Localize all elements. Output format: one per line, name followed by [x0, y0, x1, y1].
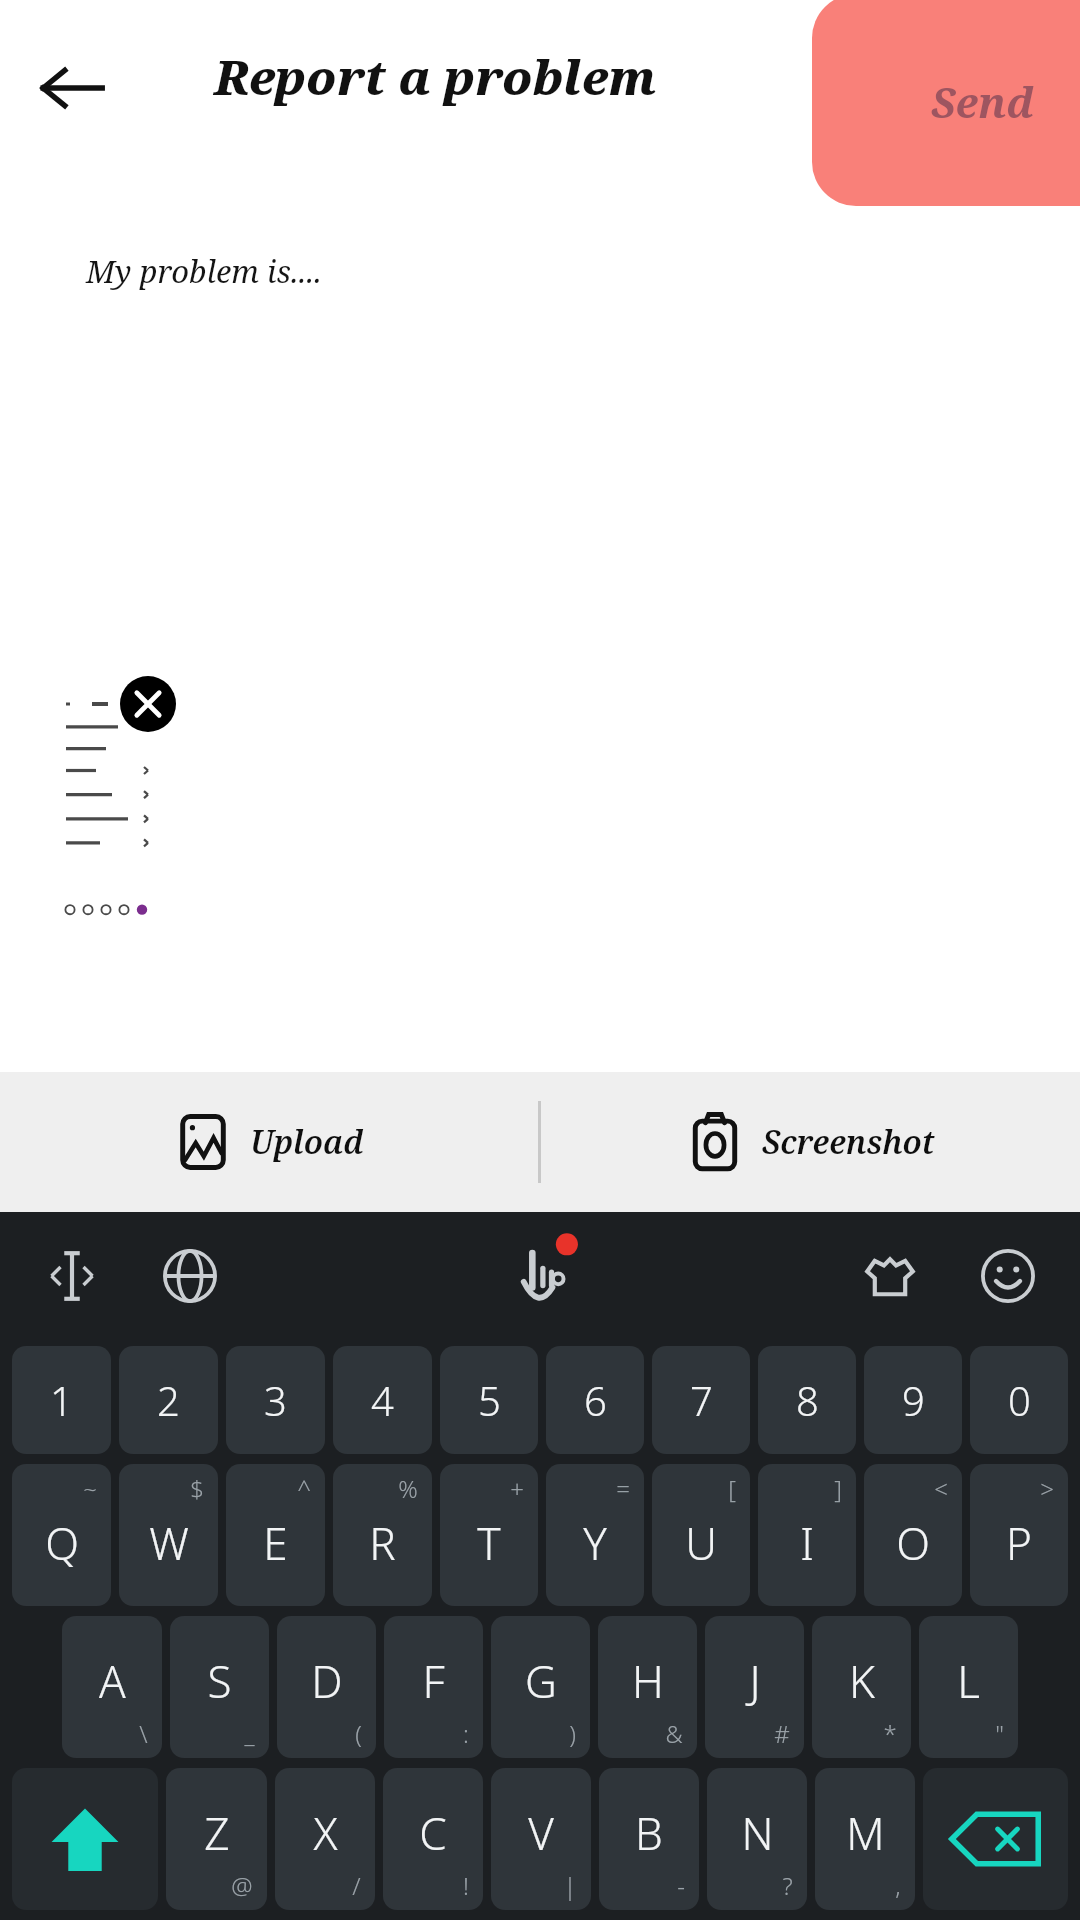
button[interactable]: Q [12, 1464, 111, 1606]
button[interactable]: 4 [333, 1346, 432, 1454]
button[interactable]: Emoji [970, 1238, 1046, 1314]
staticText: C [419, 1803, 447, 1863]
staticText: ! [463, 1869, 469, 1902]
staticText: [ [728, 1472, 736, 1505]
staticText: G [525, 1651, 557, 1711]
staticText: My problem is.... [86, 250, 322, 292]
staticText: H [632, 1651, 664, 1711]
staticText: 0 [1008, 1373, 1031, 1427]
button[interactable]: W [119, 1464, 218, 1606]
button[interactable]: Remove attachment [120, 676, 176, 732]
staticText: L [957, 1651, 980, 1711]
button[interactable]: Theme [852, 1238, 928, 1314]
button[interactable]: 1 [12, 1346, 111, 1454]
button[interactable]: R [333, 1464, 432, 1606]
button[interactable]: V [491, 1768, 591, 1910]
staticText: 2 [157, 1373, 180, 1427]
staticText: \ [139, 1717, 148, 1750]
staticText: | [563, 1869, 577, 1902]
button[interactable]: Shift [12, 1768, 158, 1910]
button[interactable]: Backspace [923, 1768, 1068, 1910]
button[interactable]: N [707, 1768, 807, 1910]
button[interactable]: P [970, 1464, 1068, 1606]
button[interactable]: Y [546, 1464, 644, 1606]
staticText: I [800, 1513, 814, 1573]
staticText: R [369, 1513, 396, 1573]
button[interactable]: O [864, 1464, 962, 1606]
staticText: ^ [297, 1472, 311, 1505]
button[interactable]: Screenshot [541, 1072, 1080, 1212]
staticText: # [774, 1717, 790, 1750]
staticText: Report a problem [214, 44, 657, 109]
staticText: - [677, 1869, 685, 1902]
staticText: " [995, 1717, 1004, 1750]
staticText: B [635, 1803, 663, 1863]
staticText: 4 [371, 1373, 394, 1427]
staticText: K [849, 1651, 875, 1711]
staticText: < [934, 1472, 948, 1505]
staticText: Z [204, 1803, 230, 1863]
staticText: Send [931, 73, 1035, 130]
button[interactable]: T [440, 1464, 538, 1606]
staticText: / [352, 1869, 361, 1902]
button[interactable]: Gesture typing [492, 1228, 588, 1324]
staticText: 3 [264, 1373, 287, 1427]
button[interactable]: Upload [0, 1072, 538, 1212]
staticText: O [896, 1513, 930, 1573]
button[interactable]: U [652, 1464, 750, 1606]
staticText: @ [231, 1869, 253, 1902]
button[interactable]: 3 [226, 1346, 325, 1454]
button[interactable]: 0 [970, 1346, 1068, 1454]
staticText: , [895, 1869, 901, 1902]
button[interactable]: B [599, 1768, 699, 1910]
button[interactable]: Change language [152, 1238, 228, 1314]
staticText: V [528, 1803, 554, 1863]
button[interactable]: 7 [652, 1346, 750, 1454]
staticText: : [463, 1717, 469, 1750]
button[interactable]: H [598, 1616, 697, 1758]
button[interactable]: X [275, 1768, 375, 1910]
button[interactable]: F [384, 1616, 483, 1758]
button[interactable]: A [62, 1616, 162, 1758]
button[interactable]: Move cursor [34, 1238, 110, 1314]
staticText: ] [834, 1472, 842, 1505]
button[interactable]: 8 [758, 1346, 856, 1454]
button[interactable]: 9 [864, 1346, 962, 1454]
button[interactable]: Attached screenshot [58, 690, 158, 920]
button[interactable]: 6 [546, 1346, 644, 1454]
staticText: A [99, 1651, 126, 1711]
button[interactable]: S [170, 1616, 269, 1758]
button[interactable]: E [226, 1464, 325, 1606]
staticText: M [846, 1803, 885, 1863]
button[interactable]: Back [36, 52, 108, 124]
button[interactable]: 2 [119, 1346, 218, 1454]
staticText: ( [355, 1717, 362, 1750]
button[interactable]: I [758, 1464, 856, 1606]
button[interactable]: J [705, 1616, 804, 1758]
staticText: ? [782, 1869, 793, 1902]
staticText: T [477, 1513, 501, 1573]
button[interactable]: Send [812, 0, 1080, 206]
staticText: 7 [690, 1373, 713, 1427]
button[interactable]: M [815, 1768, 915, 1910]
staticText: F [422, 1651, 445, 1711]
staticText: Upload [250, 1120, 364, 1164]
staticText: Q [45, 1513, 79, 1573]
staticText: 9 [902, 1373, 925, 1427]
button[interactable]: C [383, 1768, 483, 1910]
staticText: ) [569, 1717, 576, 1750]
button[interactable]: K [812, 1616, 911, 1758]
staticText: 6 [584, 1373, 607, 1427]
staticText: % [398, 1472, 418, 1505]
staticText: * [883, 1717, 897, 1750]
staticText: 8 [796, 1373, 819, 1427]
staticText: 5 [478, 1373, 501, 1427]
button[interactable]: G [491, 1616, 590, 1758]
button[interactable]: 5 [440, 1346, 538, 1454]
staticText: E [263, 1513, 288, 1573]
button[interactable]: Z [166, 1768, 267, 1910]
staticText: _ [244, 1717, 255, 1750]
button[interactable]: L [919, 1616, 1018, 1758]
staticText: Y [583, 1513, 607, 1573]
button[interactable]: D [277, 1616, 376, 1758]
